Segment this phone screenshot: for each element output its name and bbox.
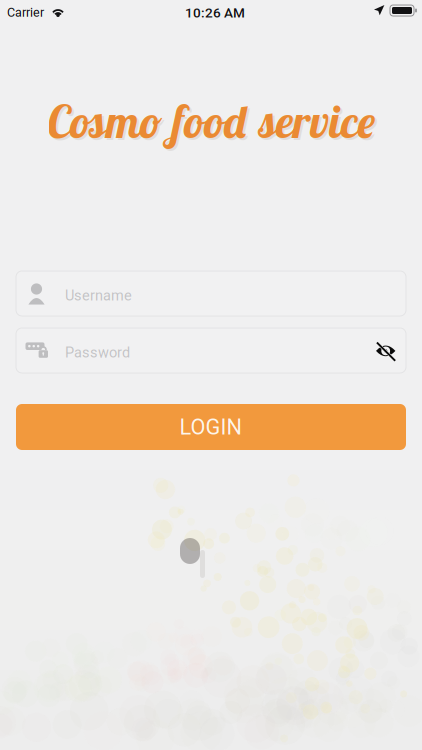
staticText: LOGIN: [179, 414, 242, 440]
staticText: Cosmo food service: [46, 93, 375, 149]
staticText: Username: [65, 287, 132, 304]
staticText: Password: [65, 344, 130, 361]
staticText: Carrier: [7, 5, 44, 20]
staticText: Cosmo food service: [48, 95, 377, 151]
button[interactable]: Show password: [369, 334, 403, 368]
button[interactable]: LOGIN: [16, 404, 406, 450]
staticText: 10:26 AM: [185, 5, 245, 21]
